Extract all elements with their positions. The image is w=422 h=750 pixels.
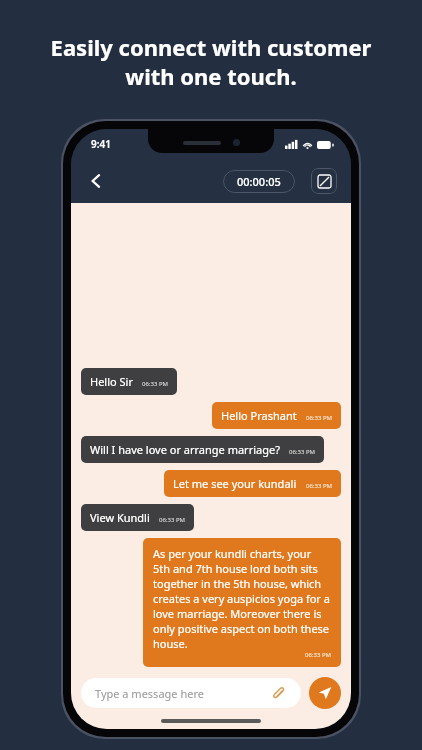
staticText: As per your kundli charts, your 5th and … (153, 546, 331, 651)
staticText: 06:33 PM (289, 448, 315, 456)
staticText: Let me see your kundali (173, 476, 297, 491)
button[interactable]: Back (79, 164, 113, 198)
staticText: 06:33 PM (305, 651, 331, 659)
button[interactable]: Will I have love or arrange marriage? (81, 436, 324, 463)
staticText: 06:33 PM (142, 380, 168, 388)
staticText: Type a message here (95, 686, 269, 701)
staticText: Hello Sir (90, 374, 133, 389)
button[interactable]: Send (309, 677, 341, 709)
button[interactable]: View Kundli (81, 504, 194, 531)
button[interactable]: 00:00:05 (237, 174, 281, 189)
button[interactable]: Disable notes (311, 168, 337, 194)
button[interactable]: Hello Sir (81, 368, 177, 395)
button[interactable]: Let me see your kundali (164, 470, 341, 497)
staticText: 06:33 PM (306, 482, 332, 490)
staticText: 00:00:05 (237, 174, 281, 189)
staticText: View Kundli (90, 510, 150, 525)
staticText: 9:41 (91, 137, 111, 151)
button[interactable]: As per your kundli charts, your 5th and … (143, 538, 341, 667)
staticText: Will I have love or arrange marriage? (90, 442, 280, 457)
button[interactable]: Type a message here (81, 678, 301, 708)
staticText: 06:33 PM (159, 516, 185, 524)
button[interactable]: Hello Prashant (212, 402, 341, 429)
staticText: Easily connect with customer with one to… (0, 32, 422, 91)
staticText: 06:33 PM (306, 414, 332, 422)
button[interactable]: Attach file (269, 684, 287, 702)
staticText: Hello Prashant (221, 408, 297, 423)
